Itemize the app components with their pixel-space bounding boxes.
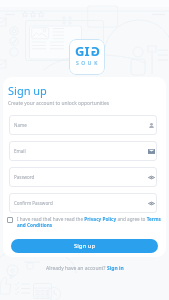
staticText: G [90,42,100,60]
button[interactable]: I have read theI have read the Privacy P… [7,216,166,228]
staticText: Password [14,174,148,180]
button[interactable]: Sign up [11,239,158,253]
button[interactable]: Name [14,115,155,135]
button[interactable]: Confirm Password [14,193,155,213]
staticText: Name [14,122,148,128]
other: Name [148,122,155,129]
other: Show password [148,174,155,181]
staticText: Confirm Password [14,200,148,206]
staticText: Sign up [8,83,47,98]
button[interactable]: Password [14,167,155,187]
staticText: Already have an account? [46,265,107,272]
other: Email [148,148,155,155]
staticText: SOUK [76,60,100,67]
button[interactable]: Email [14,141,155,161]
staticText: Email [14,148,148,154]
staticText: I have read theI have read the Privacy P… [17,216,166,228]
staticText: GI [75,42,90,60]
other: Show password [148,200,155,207]
staticText: Sign up [74,242,96,250]
button[interactable]: Sign in [107,265,124,272]
staticText: Create your account to unlock opportunit… [8,100,110,107]
